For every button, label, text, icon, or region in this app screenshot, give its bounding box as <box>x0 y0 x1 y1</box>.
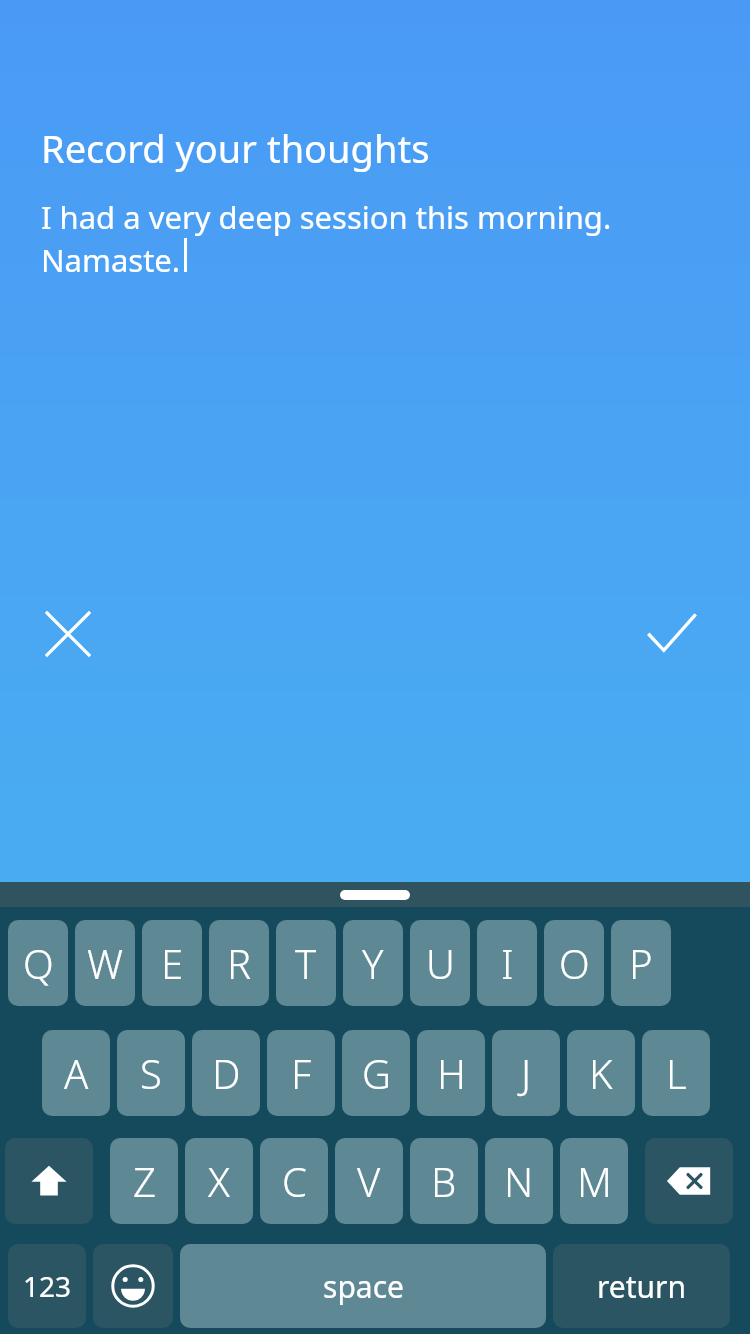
button[interactable]: J <box>492 1030 560 1116</box>
button[interactable]: V <box>335 1138 403 1224</box>
staticText: F <box>291 1046 312 1100</box>
button[interactable]: Resize keyboard <box>0 882 750 907</box>
staticText: 123 <box>23 1267 72 1305</box>
staticText: R <box>227 936 251 990</box>
staticText: D <box>212 1046 241 1100</box>
staticText: T <box>295 936 317 990</box>
staticText: Z <box>133 1154 156 1208</box>
staticText: return <box>597 1266 687 1307</box>
button[interactable]: N <box>485 1138 553 1224</box>
staticText: W <box>87 936 123 990</box>
staticText: G <box>362 1046 391 1100</box>
staticText: M <box>577 1154 612 1208</box>
button[interactable]: C <box>260 1138 328 1224</box>
button[interactable]: Backspace <box>645 1138 733 1224</box>
staticText: K <box>589 1046 613 1100</box>
button[interactable]: return <box>553 1244 730 1328</box>
button[interactable]: T <box>276 920 336 1006</box>
staticText: E <box>161 936 184 990</box>
staticText: V <box>357 1154 381 1208</box>
button[interactable]: X <box>185 1138 253 1224</box>
button[interactable]: B <box>410 1138 478 1224</box>
staticText: N <box>504 1154 534 1208</box>
staticText: space <box>323 1266 404 1307</box>
staticText: Y <box>362 936 384 990</box>
button[interactable]: S <box>117 1030 185 1116</box>
button[interactable]: Numbers <box>8 1244 86 1328</box>
staticText: H <box>437 1046 466 1100</box>
button[interactable]: Z <box>110 1138 178 1224</box>
button[interactable]: O <box>544 920 604 1006</box>
button[interactable]: H <box>417 1030 485 1116</box>
button[interactable]: K <box>567 1030 635 1116</box>
staticText: I had a very deep session this morning. … <box>41 196 612 281</box>
button[interactable]: Q <box>8 920 68 1006</box>
staticText: Q <box>23 936 54 990</box>
button[interactable]: W <box>75 920 135 1006</box>
button[interactable]: A <box>42 1030 110 1116</box>
button[interactable]: F <box>267 1030 335 1116</box>
button[interactable]: D <box>192 1030 260 1116</box>
button[interactable]: P <box>611 920 671 1006</box>
staticText: X <box>208 1154 230 1208</box>
button[interactable]: Cancel <box>30 596 106 672</box>
button[interactable]: G <box>342 1030 410 1116</box>
staticText: C <box>282 1154 307 1208</box>
staticText: I <box>501 936 514 990</box>
button[interactable]: I <box>477 920 537 1006</box>
staticText: L <box>666 1046 687 1100</box>
staticText: J <box>521 1046 532 1100</box>
staticText: B <box>431 1154 457 1208</box>
staticText: A <box>64 1046 89 1100</box>
button[interactable]: Confirm <box>634 596 710 672</box>
button[interactable]: Shift <box>5 1138 93 1224</box>
staticText: P <box>629 936 653 990</box>
button[interactable]: space <box>180 1244 546 1328</box>
staticText: O <box>559 936 590 990</box>
button[interactable]: L <box>642 1030 710 1116</box>
button[interactable]: Emoji <box>93 1244 173 1328</box>
staticText: Record your thoughts <box>41 122 430 174</box>
button[interactable]: E <box>142 920 202 1006</box>
staticText: U <box>426 936 455 990</box>
staticText: S <box>140 1046 162 1100</box>
button[interactable]: R <box>209 920 269 1006</box>
button[interactable]: M <box>560 1138 628 1224</box>
button[interactable]: Y <box>343 920 403 1006</box>
button[interactable]: U <box>410 920 470 1006</box>
